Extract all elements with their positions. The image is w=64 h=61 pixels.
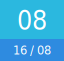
staticText: 16 / 08 (13, 43, 51, 57)
staticText: 08 (17, 5, 47, 36)
button[interactable]: 08 (0, 0, 64, 61)
